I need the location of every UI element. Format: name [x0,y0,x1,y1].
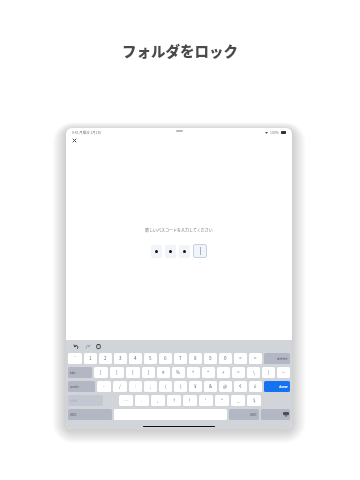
button[interactable]: 3 [114,353,127,364]
staticText: ABC [70,412,77,417]
button[interactable]: ~ [277,367,290,378]
button[interactable]: - [97,381,111,392]
staticText: 4 [134,355,137,362]
button[interactable]: ` [68,353,82,364]
staticText: delete [277,356,288,361]
staticText: ^ [192,369,195,376]
button[interactable]: , [151,395,165,406]
button[interactable]: < [234,353,247,364]
staticText: : [135,383,137,390]
staticText: ABC [250,412,257,417]
button[interactable]: ] [110,367,124,378]
button[interactable]: 6 [159,353,172,364]
button[interactable]: 元に戻す [73,343,80,350]
staticText: ` [74,355,77,362]
button[interactable]: tab [68,367,92,378]
staticText: | [268,369,270,376]
button[interactable]: * [202,367,215,378]
staticText: 2 [104,355,107,362]
staticText: " [221,397,224,404]
button[interactable]: 閉じる [70,136,78,144]
staticText: 9 [209,355,212,362]
button[interactable]: done [264,381,290,392]
staticText: フォルダをロック [122,40,238,61]
button[interactable]: ペースト [95,343,102,350]
staticText: 新しいパスコードを入力してください [145,227,213,233]
button[interactable]: @ [219,381,232,392]
button[interactable]: ? [167,395,181,406]
staticText: 0 [224,355,227,362]
staticText: / [119,383,121,390]
button[interactable]: " [215,395,229,406]
staticText: ¢ [239,383,242,390]
button[interactable]: { [126,367,140,378]
button[interactable]: 4 [129,353,142,364]
button[interactable]: キーボードを閉じる [261,409,290,420]
button[interactable]: : [129,381,142,392]
button[interactable]: やり直す [84,343,91,350]
staticText: £ [254,383,257,390]
button[interactable]: ; [144,381,157,392]
button[interactable]: ) [174,381,187,392]
button[interactable] [165,245,176,258]
button[interactable]: 1 [84,353,97,364]
button[interactable] [193,244,207,258]
staticText: & [209,383,213,390]
button[interactable]: £ [249,381,262,392]
staticText: tab [70,370,76,375]
staticText: shift [70,398,78,403]
button[interactable]: _ [231,395,245,406]
button[interactable]: undo [68,381,95,392]
button[interactable]: = [232,367,245,378]
button[interactable]: delete [264,353,290,364]
button[interactable]: / [113,381,127,392]
button[interactable]: > [249,353,262,364]
button[interactable]: # [157,367,170,378]
button[interactable]: & [204,381,217,392]
staticText: = [237,369,240,376]
staticText: done [279,384,288,389]
button[interactable]: + [217,367,230,378]
button[interactable] [151,245,162,258]
staticText: 9:41 月曜日 1月1日 [72,130,101,135]
staticText: % [176,369,181,376]
button[interactable]: } [142,367,155,378]
staticText: \ [253,369,255,376]
button[interactable] [179,245,190,258]
staticText: 6 [164,355,167,362]
button[interactable]: 9 [204,353,217,364]
staticText: . [141,397,143,404]
button[interactable]: ' [199,395,213,406]
button[interactable]: 5 [144,353,157,364]
button[interactable]: … [119,395,133,406]
button[interactable]: \ [247,367,260,378]
staticText: 7 [179,355,182,362]
staticText: + [222,369,225,376]
button[interactable]: 0 [219,353,232,364]
staticText: } [148,369,150,376]
button[interactable]: $ [247,395,261,406]
button[interactable]: ¢ [234,381,247,392]
staticText: 1 [89,355,92,362]
button[interactable]: 8 [189,353,202,364]
button[interactable]: ( [159,381,172,392]
button[interactable]: ¥ [189,381,202,392]
button[interactable]: 7 [174,353,187,364]
staticText: ! [189,397,191,404]
button[interactable]: [ [94,367,108,378]
button[interactable]: 2 [99,353,112,364]
staticText: 8 [194,355,197,362]
button[interactable]: ABC [229,409,259,420]
staticText: [ [100,369,102,376]
button[interactable]: % [172,367,185,378]
button[interactable]: ABC [68,409,112,420]
button[interactable]: . [135,395,149,406]
button[interactable]: ! [183,395,197,406]
button[interactable]: ^ [187,367,200,378]
staticText: < [239,355,242,362]
staticText: … [124,397,129,404]
button[interactable]: | [262,367,275,378]
staticText: 3 [119,355,122,362]
